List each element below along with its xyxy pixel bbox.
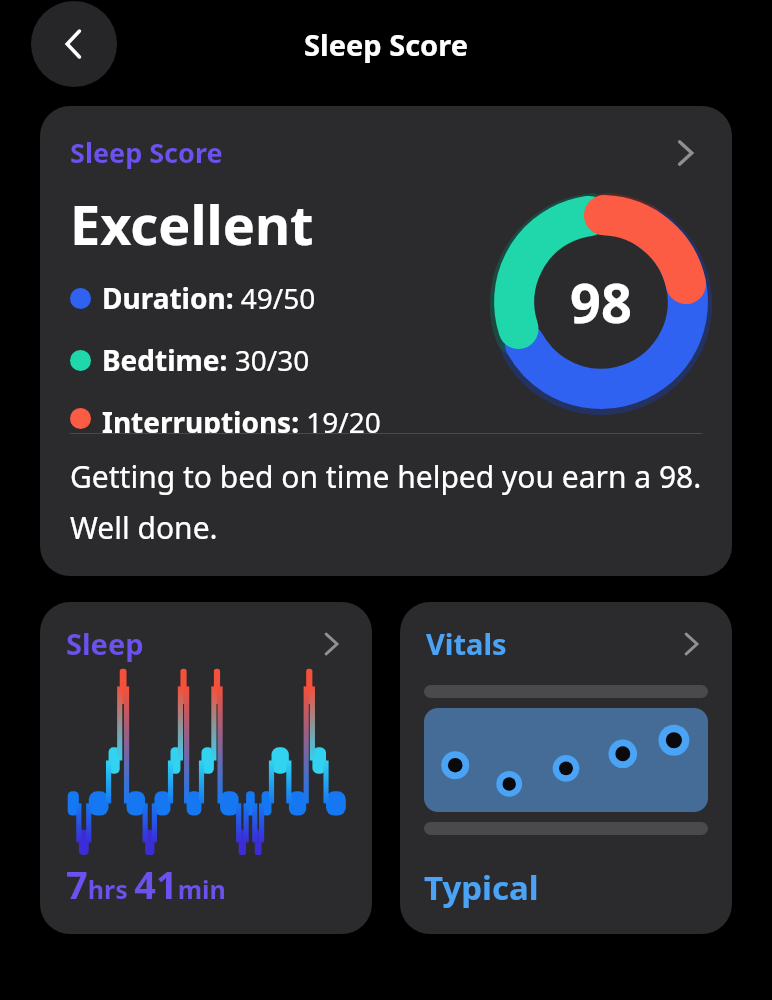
staticText: Typical [424, 865, 539, 910]
staticText: Interruptions: 19/20 [102, 403, 381, 433]
staticText: Bedtime: 30/30 [102, 341, 310, 379]
staticText: Excellent [70, 187, 314, 261]
staticText: Sleep [66, 624, 144, 663]
staticText: 7hrs 41min [66, 858, 226, 910]
staticText: Getting to bed on time helped you earn a… [70, 456, 702, 548]
button[interactable]: Vitals [400, 602, 732, 934]
staticText: 98 [570, 265, 632, 339]
button[interactable]: Sleep [40, 602, 372, 934]
button[interactable]: Sleep Score [40, 106, 732, 576]
button[interactable]: Back [31, 1, 117, 87]
staticText: Vitals [426, 624, 507, 663]
staticText: Duration: 49/50 [102, 279, 316, 317]
staticText: Sleep Score [304, 25, 468, 64]
staticText: Sleep Score [70, 134, 223, 171]
